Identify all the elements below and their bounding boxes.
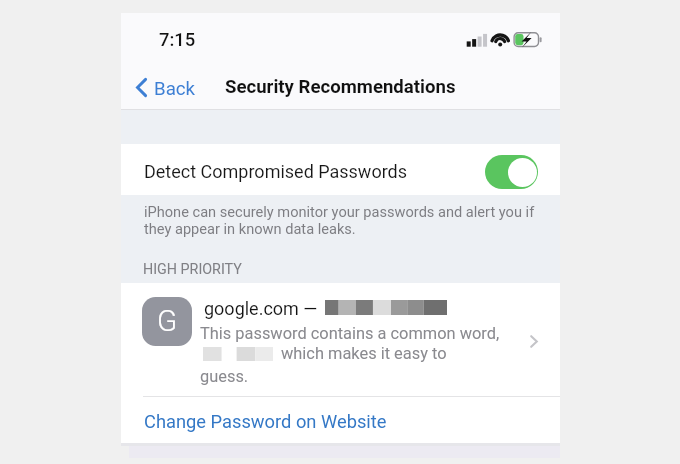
button[interactable]: Change Password on Website (121, 395, 560, 443)
staticText: Security Recommendations (225, 76, 456, 98)
staticText: HIGH PRIORITY (143, 261, 242, 278)
button[interactable]: G (121, 283, 560, 402)
staticText: google.com — (204, 298, 318, 319)
staticText: Detect Compromised Passwords (144, 161, 408, 182)
staticText: Change Password on Website (144, 411, 387, 432)
button[interactable]: Detect Compromised Passwords (121, 144, 560, 195)
staticText: 7:15 (159, 29, 196, 51)
staticText: G (157, 304, 178, 339)
staticText: which makes it easy to (281, 344, 447, 363)
staticText: they appear in known data leaks. (144, 220, 356, 237)
staticText: iPhone can securely monitor your passwor… (144, 203, 535, 220)
staticText: This password contains a common word, (200, 324, 500, 343)
staticText: Back (154, 78, 196, 100)
button[interactable]: Back (130, 72, 203, 102)
staticText: guess. (200, 367, 249, 386)
